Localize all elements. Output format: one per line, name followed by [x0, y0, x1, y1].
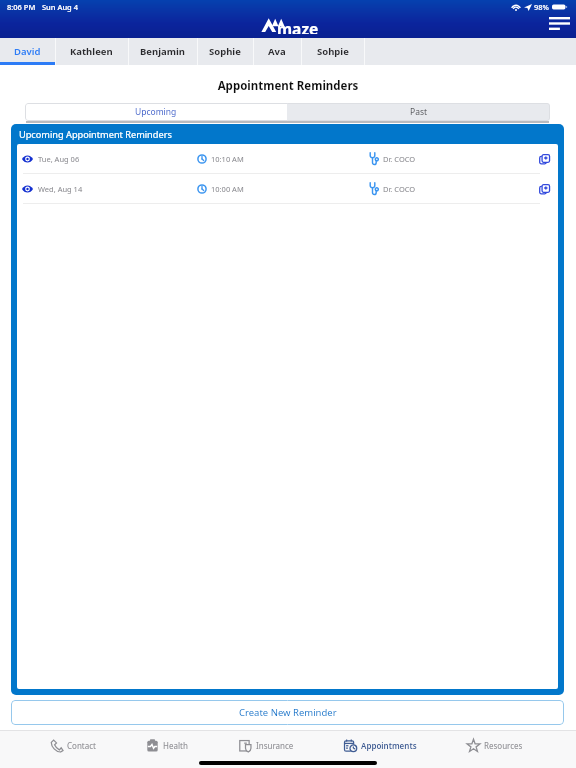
staticText: 98%: [534, 2, 549, 12]
button[interactable]: Duplicate: [536, 181, 552, 197]
button[interactable]: Appointments: [344, 731, 417, 759]
button[interactable]: Tue, Aug 06: [17, 144, 558, 173]
staticText: Sophie: [209, 45, 241, 58]
staticText: Ava: [268, 45, 286, 58]
staticText: Past: [410, 106, 428, 118]
button[interactable]: Create New Reminder: [11, 700, 564, 725]
button[interactable]: Insurance: [239, 731, 294, 759]
button[interactable]: Kathleen: [55, 38, 128, 65]
button[interactable]: Wed, Aug 14: [17, 174, 558, 203]
button[interactable]: Resources: [467, 731, 523, 759]
button[interactable]: Menu: [542, 6, 576, 40]
staticText: Resources: [484, 740, 523, 751]
staticText: Sun Aug 4: [42, 2, 78, 12]
staticText: Wed, Aug 14: [38, 184, 83, 194]
staticText: Contact: [67, 740, 96, 751]
staticText: Sohpie: [317, 45, 349, 58]
staticText: Health: [163, 740, 188, 751]
button[interactable]: Sohpie: [301, 38, 364, 65]
staticText: David: [14, 45, 41, 58]
staticText: 8:06 PM: [7, 2, 36, 12]
staticText: Tue, Aug 06: [38, 154, 80, 164]
staticText: Create New Reminder: [239, 706, 337, 719]
staticText: Upcoming: [135, 106, 177, 118]
staticText: maze: [277, 18, 319, 34]
staticText: Appointment Reminders: [0, 78, 576, 94]
button[interactable]: Past: [287, 103, 550, 121]
button[interactable]: David: [0, 38, 55, 65]
button[interactable]: Ava: [253, 38, 301, 65]
button[interactable]: Benjamin: [128, 38, 197, 65]
staticText: 10:10 AM: [211, 154, 244, 164]
button[interactable]: Sophie: [197, 38, 253, 65]
button[interactable]: Duplicate: [536, 151, 552, 167]
button[interactable]: Upcoming: [25, 103, 287, 121]
staticText: Dr. COCO: [383, 154, 416, 164]
staticText: Insurance: [256, 740, 294, 751]
staticText: Kathleen: [70, 45, 113, 58]
staticText: Benjamin: [140, 45, 185, 58]
staticText: Appointments: [361, 740, 417, 751]
staticText: Dr. COCO: [383, 184, 416, 194]
button[interactable]: Contact: [50, 731, 96, 759]
staticText: 10:00 AM: [211, 184, 244, 194]
staticText: Upcoming Appointment Reminders: [19, 128, 172, 141]
button[interactable]: Health: [146, 731, 188, 759]
